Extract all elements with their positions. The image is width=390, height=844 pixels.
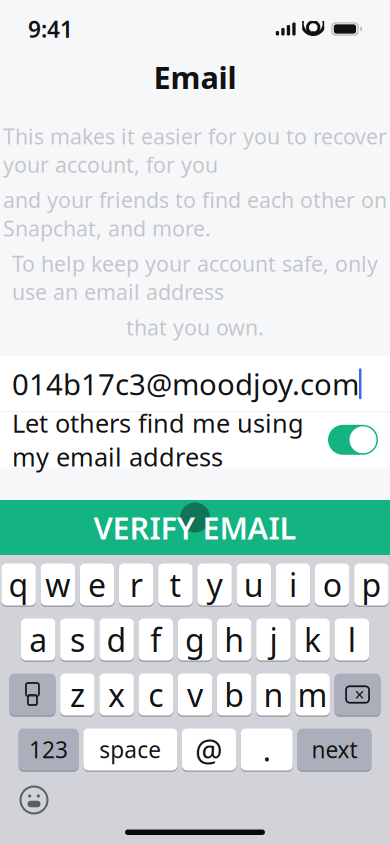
button[interactable]: r <box>119 562 153 607</box>
staticText: t <box>169 563 181 606</box>
staticText: and your friends to find each other on S… <box>3 186 387 242</box>
staticText: p <box>361 563 381 606</box>
button[interactable]: u <box>236 562 271 607</box>
staticText: 014b17c3@moodjoy.com <box>12 364 359 403</box>
staticText: m <box>298 673 328 716</box>
staticText: o <box>323 563 342 606</box>
button[interactable]: k <box>295 617 330 662</box>
button[interactable]: 014b17c3@moodjoy.com <box>0 356 390 411</box>
button[interactable]: . <box>241 727 293 772</box>
staticText: j <box>269 618 277 661</box>
staticText: e <box>88 563 106 606</box>
staticText: × <box>354 683 364 706</box>
button[interactable]: h <box>217 617 251 662</box>
button[interactable]: a <box>21 617 55 662</box>
button[interactable]: q <box>1 562 36 607</box>
button[interactable]: j <box>256 617 291 662</box>
button[interactable]: i <box>276 562 310 607</box>
staticText: 123 <box>29 734 68 764</box>
button[interactable]: w <box>40 562 75 607</box>
button[interactable]: f <box>139 617 173 662</box>
button[interactable]: Shift <box>9 672 55 717</box>
button[interactable]: v <box>178 672 212 717</box>
button[interactable]: 123 <box>19 727 79 772</box>
staticText: that you own. <box>126 313 264 341</box>
button[interactable]: b <box>217 672 251 717</box>
button[interactable]: n <box>256 672 291 717</box>
staticText: l <box>348 618 356 661</box>
button[interactable]: space <box>83 727 177 772</box>
button[interactable]: s <box>60 617 95 662</box>
button[interactable]: next <box>297 727 371 772</box>
staticText: c <box>148 673 163 716</box>
button[interactable]: @ <box>182 727 236 772</box>
staticText: r <box>130 563 143 606</box>
button[interactable]: Emoji keyboard <box>12 782 56 818</box>
staticText: v <box>187 673 203 716</box>
staticText: a <box>29 618 47 661</box>
button[interactable]: y <box>197 562 232 607</box>
staticText: 9:41 <box>28 14 73 44</box>
button[interactable]: Delete <box>334 672 380 717</box>
staticText: Let others find me using my email addres… <box>12 406 304 473</box>
staticText: @ <box>195 729 223 770</box>
staticText: z <box>70 673 85 716</box>
staticText: Email <box>153 57 236 97</box>
staticText: n <box>263 673 283 716</box>
staticText: s <box>70 618 85 661</box>
staticText: next <box>311 734 357 764</box>
button[interactable]: c <box>139 672 173 717</box>
button[interactable]: Let others find me using my email addres… <box>0 412 390 467</box>
button[interactable]: g <box>178 617 212 662</box>
button[interactable]: p <box>354 562 389 607</box>
staticText: To help keep your account safe, only use… <box>12 249 378 306</box>
button[interactable]: l <box>334 617 369 662</box>
staticText: b <box>224 673 244 716</box>
staticText: w <box>45 563 70 606</box>
staticText: f <box>150 618 161 661</box>
button[interactable]: d <box>99 617 134 662</box>
staticText: u <box>244 563 264 606</box>
staticText: q <box>9 563 29 606</box>
staticText: h <box>224 618 244 661</box>
button[interactable]: m <box>295 672 330 717</box>
staticText: VERIFY EMAIL <box>93 507 296 548</box>
staticText: y <box>207 563 223 606</box>
staticText: g <box>185 618 205 661</box>
button[interactable]: x <box>99 672 134 717</box>
button[interactable]: e <box>80 562 114 607</box>
staticText: x <box>108 673 125 716</box>
staticText: This makes it easier for you to recover … <box>3 122 387 179</box>
staticText: d <box>107 618 127 661</box>
button[interactable]: VERIFY EMAIL <box>0 500 390 555</box>
button[interactable]: o <box>315 562 349 607</box>
staticText: k <box>304 618 321 661</box>
staticText: . <box>263 729 271 770</box>
button[interactable]: t <box>158 562 193 607</box>
staticText: space <box>99 734 161 764</box>
button[interactable]: z <box>60 672 95 717</box>
staticText: i <box>289 563 297 606</box>
